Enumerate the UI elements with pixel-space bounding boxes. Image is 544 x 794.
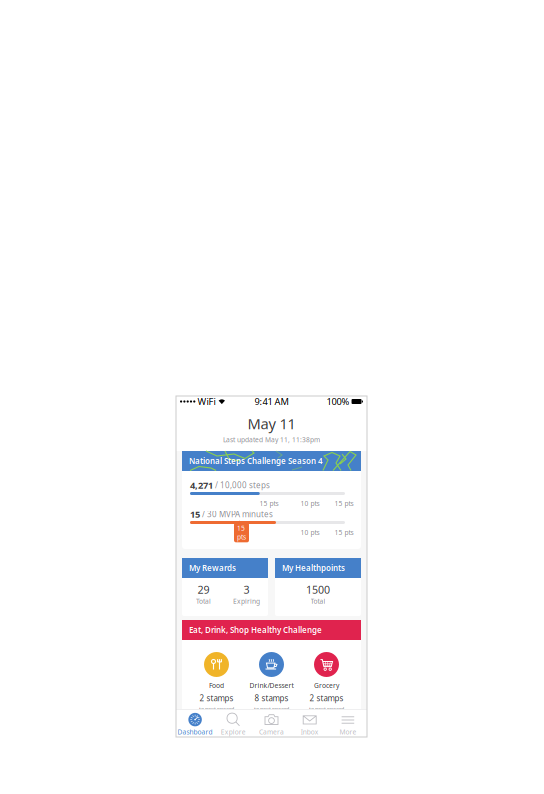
- staticText: Eat, Drink, Shop Healthy Challenge: [189, 625, 322, 635]
- staticText: Total: [310, 597, 325, 606]
- staticText: to next reward: [309, 705, 344, 713]
- staticText: Food: [209, 681, 224, 690]
- staticText: / 30 MVPA minutes: [200, 509, 273, 519]
- staticText: Dashboard: [178, 728, 213, 736]
- staticText: Drink/Dessert: [249, 681, 293, 690]
- staticText: 8 stamps: [254, 693, 288, 703]
- staticText: Camera: [259, 728, 284, 736]
- button[interactable]: Dashboard: [176, 710, 214, 737]
- button[interactable]: My Healthpoints: [275, 558, 361, 616]
- button[interactable]: Inbox: [291, 710, 329, 737]
- staticText: WiFi: [197, 395, 215, 408]
- button[interactable]: Explore: [214, 710, 252, 737]
- button[interactable]: My Rewards: [182, 558, 268, 616]
- staticText: Expiring: [233, 597, 260, 606]
- staticText: Inbox: [301, 728, 319, 736]
- staticText: National Steps Challenge Season 4: [189, 456, 323, 466]
- staticText: 3: [243, 582, 249, 597]
- button[interactable]: Drink/Dessert: [244, 652, 299, 722]
- staticText: 10 pts: [300, 528, 319, 537]
- staticText: 15 pts: [237, 524, 246, 541]
- staticText: Explore: [221, 728, 246, 736]
- button[interactable]: Food: [189, 652, 244, 722]
- button[interactable]: Camera: [252, 710, 291, 737]
- staticText: 9:41 AM: [254, 395, 288, 408]
- staticText: Last updated May 11, 11:38pm: [223, 435, 320, 444]
- staticText: 15 pts: [259, 499, 278, 508]
- staticText: My Rewards: [189, 563, 236, 573]
- staticText: 2 stamps: [309, 693, 343, 703]
- staticText: 15: [190, 508, 200, 520]
- staticText: More: [339, 728, 356, 736]
- button[interactable]: More: [329, 710, 367, 737]
- staticText: 10 pts: [300, 499, 319, 508]
- staticText: 15 pts: [334, 499, 353, 508]
- staticText: May 11: [247, 414, 295, 433]
- staticText: to next reward: [199, 705, 234, 713]
- staticText: 100%: [326, 395, 349, 408]
- staticText: to next reward: [254, 705, 289, 713]
- staticText: My Healthpoints: [282, 563, 345, 573]
- staticText: 2 stamps: [199, 693, 233, 703]
- staticText: 15 pts: [334, 528, 353, 537]
- staticText: 1500: [306, 582, 330, 597]
- staticText: 29: [197, 582, 209, 597]
- button[interactable]: Grocery: [299, 652, 354, 722]
- staticText: / 10,000 steps: [213, 480, 270, 490]
- staticText: Total: [196, 597, 211, 606]
- staticText: Grocery: [314, 681, 339, 690]
- staticText: 4,271: [190, 479, 213, 491]
